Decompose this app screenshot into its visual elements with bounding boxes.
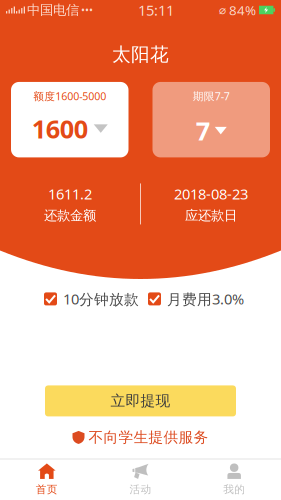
staticText: 15:11 bbox=[138, 0, 174, 20]
staticText: 额度1600-5000 bbox=[33, 89, 106, 103]
staticText: 10分钟放款 bbox=[63, 289, 139, 309]
staticText: ••• bbox=[81, 3, 93, 17]
staticText: 活动 bbox=[129, 483, 151, 496]
button[interactable]: 我的 bbox=[187, 457, 281, 500]
staticText: 1611.2 bbox=[48, 184, 92, 203]
staticText: 期限7-7 bbox=[193, 89, 230, 103]
staticText: 还款金额 bbox=[44, 207, 96, 224]
staticText: 中国电信 bbox=[27, 2, 79, 18]
button[interactable]: 月费用3.0% bbox=[148, 289, 244, 309]
button[interactable]: 额度1600-5000 bbox=[11, 82, 128, 157]
staticText: 首页 bbox=[36, 483, 58, 496]
staticText: 我的 bbox=[223, 483, 245, 496]
button[interactable]: 10分钟放款 bbox=[44, 289, 139, 309]
staticText: 应还款日 bbox=[185, 207, 237, 224]
button[interactable]: 期限7-7 bbox=[152, 82, 270, 157]
staticText: 7 bbox=[196, 114, 210, 147]
staticText: 不向学生提供服务 bbox=[88, 428, 208, 446]
staticText: 太阳花 bbox=[112, 43, 169, 66]
staticText: 1600 bbox=[32, 112, 88, 145]
button[interactable]: 立即提现 bbox=[45, 385, 236, 416]
staticText: 2018-08-23 bbox=[174, 184, 248, 203]
staticText: 月费用3.0% bbox=[167, 289, 244, 309]
button[interactable]: 不向学生提供服务 bbox=[72, 416, 208, 448]
button[interactable]: 活动 bbox=[94, 457, 187, 500]
staticText: 84% bbox=[229, 1, 256, 19]
staticText: ⌀ bbox=[219, 3, 226, 17]
button[interactable]: 首页 bbox=[0, 457, 94, 500]
staticText: 立即提现 bbox=[110, 392, 170, 410]
